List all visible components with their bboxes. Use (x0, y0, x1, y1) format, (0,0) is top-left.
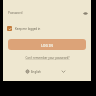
staticText: Password (8, 11, 23, 15)
button[interactable]: LOG IN (8, 39, 86, 50)
staticText: Keep me logged in (15, 27, 41, 31)
button[interactable]: Keep me logged in (7, 25, 41, 32)
button[interactable]: English (26, 68, 65, 75)
button[interactable]: Can't remember your password? (3, 54, 91, 61)
staticText: Can't remember your password? (25, 56, 70, 60)
staticText: LOG IN (41, 43, 53, 48)
button[interactable]: Show password (81, 9, 90, 17)
staticText: English (31, 70, 41, 74)
